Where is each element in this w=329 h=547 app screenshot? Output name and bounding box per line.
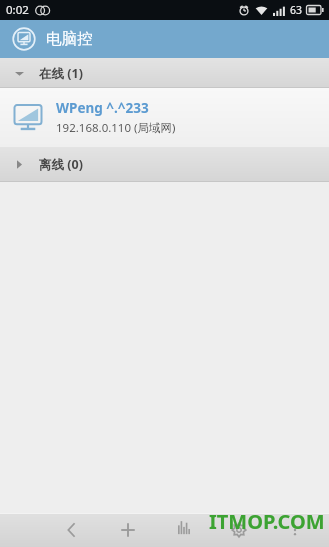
button[interactable]: 离线 (0) [0, 147, 329, 182]
button[interactable]: More options [275, 513, 315, 547]
staticText: WPeng ^.^233 [56, 99, 149, 117]
button[interactable]: 电脑控 app icon [0, 20, 329, 58]
button[interactable]: Back [52, 513, 92, 547]
button[interactable]: Statistics [164, 513, 204, 547]
button[interactable]: 在线 (1) [0, 58, 329, 88]
button[interactable]: Settings [219, 513, 259, 547]
staticText: 离线 (0) [39, 156, 83, 173]
staticText: ITMOP.COM [209, 508, 325, 535]
staticText: 63 [290, 3, 303, 17]
staticText: 192.168.0.110 (局域网) [56, 120, 176, 136]
staticText: 0:02 [6, 2, 29, 18]
button[interactable]: Add [108, 513, 148, 547]
button[interactable]: WPeng ^.^233 [0, 88, 329, 147]
staticText: 电脑控 [46, 29, 93, 49]
other: 电脑控 app icon [12, 27, 36, 51]
staticText: 在线 (1) [39, 65, 83, 82]
